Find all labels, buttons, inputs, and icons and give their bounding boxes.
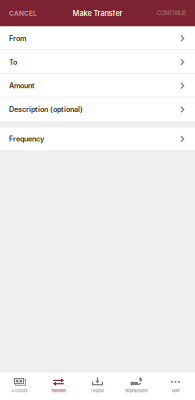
- button[interactable]: Description (optional): [0, 98, 195, 121]
- button[interactable]: Deposit: [78, 372, 117, 400]
- staticText: CANCEL: [9, 9, 37, 17]
- staticText: Deposit: [91, 388, 104, 393]
- button[interactable]: To: [0, 50, 195, 74]
- button[interactable]: CONTINUE: [151, 0, 195, 26]
- button[interactable]: Frequency: [0, 127, 195, 150]
- staticText: Amount: [9, 81, 35, 90]
- staticText: StopPayments: [125, 388, 148, 393]
- button[interactable]: StopPayments: [117, 372, 156, 400]
- staticText: Accounts: [11, 388, 27, 393]
- button[interactable]: Transfers: [39, 372, 78, 400]
- button[interactable]: More: [156, 372, 195, 400]
- button[interactable]: CANCEL: [0, 0, 43, 26]
- button[interactable]: From: [0, 26, 195, 50]
- button[interactable]: Accounts: [0, 372, 39, 400]
- staticText: Description (optional): [9, 105, 83, 114]
- staticText: Transfers: [51, 388, 66, 393]
- staticText: From: [9, 34, 26, 43]
- staticText: To: [9, 58, 17, 66]
- staticText: More: [171, 388, 179, 393]
- staticText: Frequency: [9, 134, 44, 143]
- staticText: CONTINUE: [157, 10, 186, 17]
- button[interactable]: Amount: [0, 74, 195, 98]
- staticText: Make Transfer: [72, 9, 122, 18]
